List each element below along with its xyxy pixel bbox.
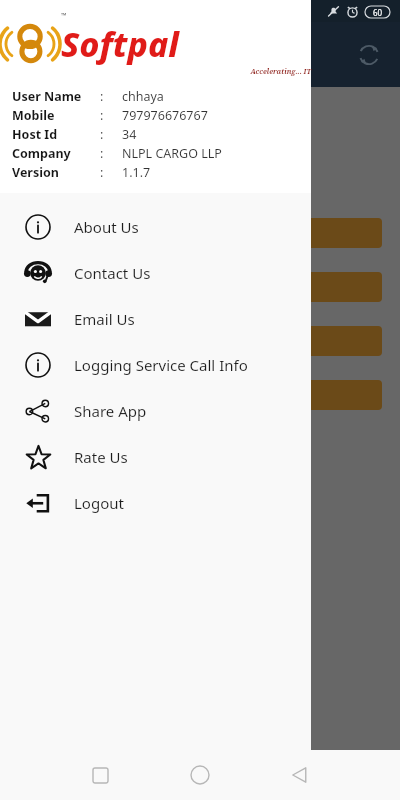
staticText: Softpal <box>61 21 179 67</box>
staticText: Contact Us <box>74 263 151 283</box>
button[interactable]: Logout <box>0 480 311 526</box>
button[interactable] <box>16 326 382 356</box>
button[interactable]: Email Us <box>0 296 311 342</box>
staticText: 60 <box>373 7 383 18</box>
button[interactable]: Refresh <box>346 32 392 78</box>
staticText: Version <box>12 164 100 181</box>
button[interactable]: Recents <box>80 755 120 795</box>
staticText: 797976676767 <box>122 107 208 124</box>
staticText: 34 <box>122 126 137 143</box>
staticText: : <box>100 107 122 124</box>
staticText: Logout <box>74 493 124 513</box>
button[interactable] <box>16 218 382 248</box>
staticText: chhaya <box>122 88 164 105</box>
button[interactable]: Home <box>180 755 220 795</box>
button[interactable]: Contact Us <box>0 250 311 296</box>
button[interactable]: Back <box>280 755 320 795</box>
button[interactable]: Rate Us <box>0 434 311 480</box>
button[interactable] <box>16 272 382 302</box>
staticText: Mobile <box>12 107 100 124</box>
staticText: About Us <box>74 217 139 237</box>
staticText: Logging Service Call Info <box>74 355 248 375</box>
button[interactable]: About Us <box>0 204 311 250</box>
button[interactable]: Logging Service Call Info <box>0 342 311 388</box>
staticText: : <box>100 164 122 181</box>
staticText: : <box>100 145 122 162</box>
staticText: Share App <box>74 401 147 421</box>
staticText: Host Id <box>12 126 100 143</box>
staticText: NLPL CARGO LLP <box>122 145 222 162</box>
staticText: ™ <box>61 11 67 21</box>
button[interactable] <box>16 380 382 410</box>
staticText: Company <box>12 145 100 162</box>
button[interactable]: Share App <box>0 388 311 434</box>
staticText: Email Us <box>74 309 135 329</box>
staticText: User Name <box>12 88 100 105</box>
staticText: : <box>100 126 122 143</box>
staticText: Accelerating... IT <box>61 67 311 77</box>
staticText: : <box>100 88 122 105</box>
staticText: 1.1.7 <box>122 164 151 181</box>
staticText: Rate Us <box>74 447 128 467</box>
